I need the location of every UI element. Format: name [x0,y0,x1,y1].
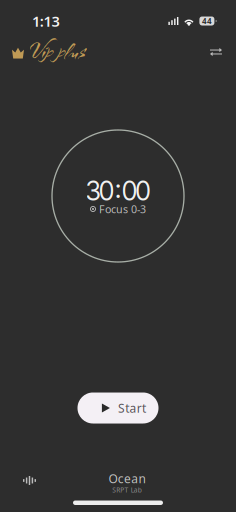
staticText: 1:13 [32,11,59,31]
button[interactable]: Vip plus [12,29,84,73]
staticText: 30 : 00 [85,175,150,207]
button[interactable]: Switch mode [201,38,224,63]
button[interactable]: Sounds [15,468,46,497]
staticText: 44 [202,16,212,26]
staticText: Vip plus [29,34,84,68]
button[interactable]: Start [77,392,158,423]
staticText: Start [118,400,146,416]
staticText: Ocean [109,471,145,486]
staticText: SRPT Lab [112,485,142,494]
staticText: Focus 0-3 [99,202,146,216]
